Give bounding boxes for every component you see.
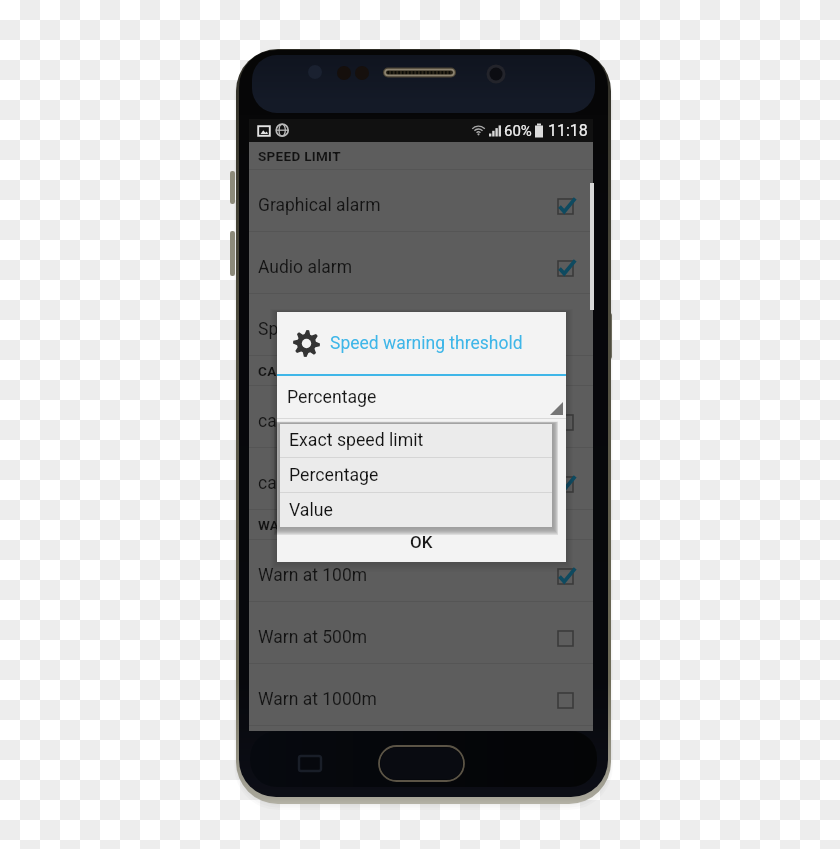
button[interactable]: Warn at 1000m [249, 664, 593, 726]
button[interactable]: camera 1 [249, 386, 593, 448]
staticText: camera 1 [258, 411, 331, 432]
staticText: Value [289, 500, 333, 521]
staticText: Audio alarm [258, 257, 352, 278]
other: GPS [275, 123, 290, 138]
other: Screenshot captured [257, 124, 271, 138]
button[interactable]: Audio alarm [249, 232, 593, 294]
staticText: Warn at 100m [258, 565, 368, 586]
staticText: Percentage [289, 465, 379, 486]
button[interactable]: Graphical alarm [249, 170, 593, 232]
staticText: SPEED LIMIT [258, 148, 341, 164]
staticText: 11:18 [548, 121, 588, 140]
staticText: Percentage [287, 387, 377, 408]
button[interactable]: Exact speed limit [280, 424, 552, 457]
staticText: CAMERA [258, 363, 315, 379]
button[interactable]: Percentage [280, 458, 552, 492]
staticText: WARNINGS [258, 517, 331, 533]
staticText: Speed warning threshold [330, 333, 523, 354]
button[interactable]: camera 2 [249, 448, 593, 510]
staticText: camera 2 [258, 473, 331, 494]
staticText: Graphical alarm [258, 195, 381, 216]
button[interactable]: Speed warning threshold [249, 294, 593, 356]
button[interactable]: Percentage [277, 376, 566, 418]
button[interactable]: Warn at 100m [249, 540, 593, 602]
button[interactable]: OK [277, 522, 566, 562]
button[interactable]: Warn at 500m [249, 602, 593, 664]
staticText: Warn at 1000m [258, 689, 377, 710]
staticText: Warn at 500m [258, 627, 368, 648]
staticText: 60% [504, 122, 532, 140]
staticText: Exact speed limit [289, 430, 424, 451]
button[interactable]: Value [280, 493, 552, 527]
staticText: Speed warning threshold [258, 319, 451, 340]
staticText: OK [410, 532, 433, 552]
